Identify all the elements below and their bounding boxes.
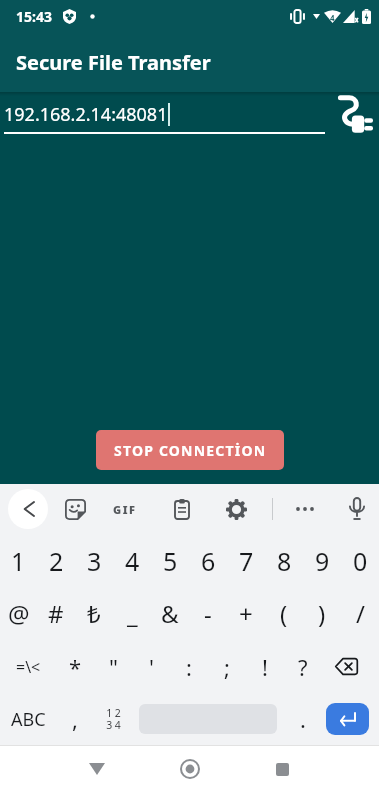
button[interactable]: ( (265, 587, 303, 640)
button[interactable] (270, 757, 294, 781)
staticText: @ (8, 597, 30, 630)
button[interactable]: ! (246, 640, 284, 693)
staticText: ₺ (87, 597, 101, 630)
button[interactable]: =\< (0, 640, 56, 693)
button[interactable]: 2 (37, 534, 75, 587)
staticText: 4 (125, 544, 140, 578)
staticText: , (72, 704, 78, 734)
staticText: 1 2 3 4 (106, 706, 121, 732)
staticText: =\< (16, 656, 41, 678)
staticText: + (239, 597, 253, 630)
button[interactable]: 9 (303, 534, 341, 587)
button[interactable]: : (170, 640, 208, 693)
staticText: ( (280, 597, 288, 630)
staticText: ABC (11, 707, 46, 732)
staticText: 3 (87, 544, 102, 578)
staticText: # (48, 597, 64, 630)
staticText: Secure File Transfer (16, 49, 211, 76)
staticText: 7 (239, 544, 254, 578)
button[interactable] (59, 493, 92, 526)
staticText: 6 (201, 544, 216, 578)
staticText: 192.168.2.14:48081 (4, 102, 168, 127)
button[interactable]: ' (132, 640, 170, 693)
button[interactable]: , (56, 693, 94, 745)
staticText: : (186, 652, 192, 682)
button[interactable] (220, 493, 253, 526)
button[interactable]: 8 (265, 534, 303, 587)
button[interactable]: GIF (113, 502, 137, 517)
button[interactable]: 0 (341, 534, 379, 587)
button[interactable] (8, 489, 48, 529)
button[interactable]: 192.168.2.14:48081 (4, 102, 325, 134)
button[interactable]: 7 (227, 534, 265, 587)
staticText: * (69, 652, 82, 682)
button[interactable] (168, 493, 196, 526)
button[interactable] (328, 92, 374, 142)
button[interactable]: 1 2 3 4 (94, 693, 132, 745)
button[interactable]: 5 (151, 534, 189, 587)
staticText: ' (149, 652, 154, 682)
button[interactable]: ) (303, 587, 341, 640)
button[interactable]: & (151, 587, 189, 640)
staticText: GIF (113, 502, 137, 517)
staticText: 9 (315, 544, 330, 578)
staticText: _ (127, 597, 138, 630)
button[interactable]: ₺ (75, 587, 113, 640)
staticText: 2 (49, 544, 64, 578)
button[interactable]: 6 (189, 534, 227, 587)
button[interactable] (83, 757, 111, 781)
button[interactable]: 4 (113, 534, 151, 587)
button[interactable]: 1 (0, 534, 37, 587)
button[interactable]: / (341, 587, 379, 640)
staticText: 0 (353, 544, 368, 578)
staticText: ; (224, 652, 230, 682)
staticText: ? (298, 652, 308, 682)
staticText: 1 (11, 544, 26, 578)
button[interactable]: ; (208, 640, 246, 693)
staticText: 15:43 (16, 7, 52, 26)
button[interactable]: # (37, 587, 75, 640)
staticText: - (204, 597, 212, 630)
button[interactable]: ABC (0, 693, 56, 745)
button[interactable] (326, 703, 369, 735)
button[interactable]: - (189, 587, 227, 640)
staticText: " (109, 652, 118, 682)
button[interactable] (322, 640, 370, 693)
staticText: . (300, 704, 306, 734)
staticText: STOP CONNECTİON (114, 441, 267, 460)
button[interactable]: _ (113, 587, 151, 640)
button[interactable] (178, 757, 202, 781)
button[interactable]: ? (284, 640, 322, 693)
staticText: 8 (277, 544, 292, 578)
staticText: 4 (330, 12, 335, 23)
button[interactable]: . (284, 693, 322, 745)
button[interactable]: STOP CONNECTİON (96, 430, 284, 470)
staticText: & (161, 597, 179, 630)
staticText: 5 (163, 544, 178, 578)
button[interactable]: " (94, 640, 132, 693)
staticText: ) (318, 597, 326, 630)
button[interactable]: @ (0, 587, 37, 640)
button[interactable] (290, 500, 320, 518)
button[interactable]: + (227, 587, 265, 640)
button[interactable] (343, 492, 371, 526)
staticText: / (356, 597, 365, 630)
button[interactable]: 3 (75, 534, 113, 587)
button[interactable]: * (56, 640, 94, 693)
staticText: ! (262, 652, 268, 682)
